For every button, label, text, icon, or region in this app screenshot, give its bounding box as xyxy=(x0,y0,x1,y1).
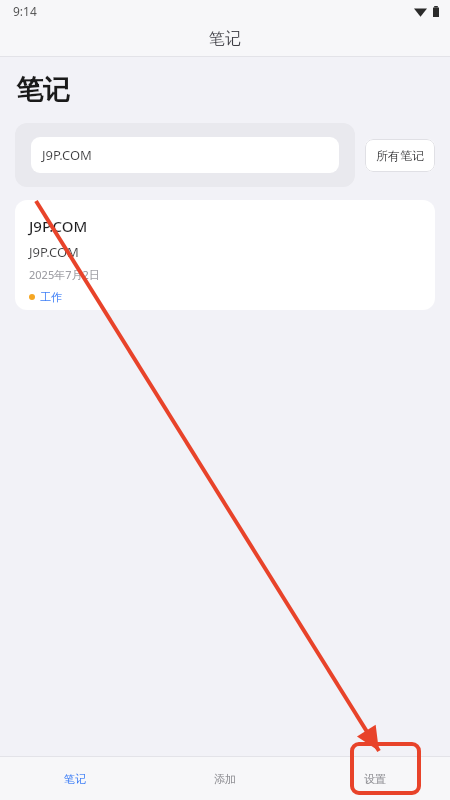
staticText: J9P.COM xyxy=(29,243,79,261)
other: Annotation xyxy=(0,0,450,800)
staticText: 笔记 xyxy=(16,73,70,107)
staticText: 笔记 xyxy=(64,772,86,786)
button[interactable]: 添加 xyxy=(150,757,300,800)
button[interactable]: J9P.COM xyxy=(31,137,339,173)
staticText: 所有笔记 xyxy=(376,148,424,163)
staticText: 9:14 xyxy=(13,3,37,19)
staticText: J9P.COM xyxy=(42,146,92,164)
staticText: 添加 xyxy=(214,772,236,786)
button[interactable]: 笔记 xyxy=(0,757,150,800)
staticText: 设置 xyxy=(364,772,386,786)
button[interactable]: J9P.COM xyxy=(15,200,435,310)
button[interactable]: 所有笔记 xyxy=(365,139,435,172)
staticText: J9P.COM xyxy=(29,216,88,236)
staticText: 笔记 xyxy=(209,29,241,49)
button[interactable]: 设置 xyxy=(300,757,450,800)
staticText: 2025年7月2日 xyxy=(29,267,100,282)
staticText: 工作 xyxy=(40,290,62,304)
